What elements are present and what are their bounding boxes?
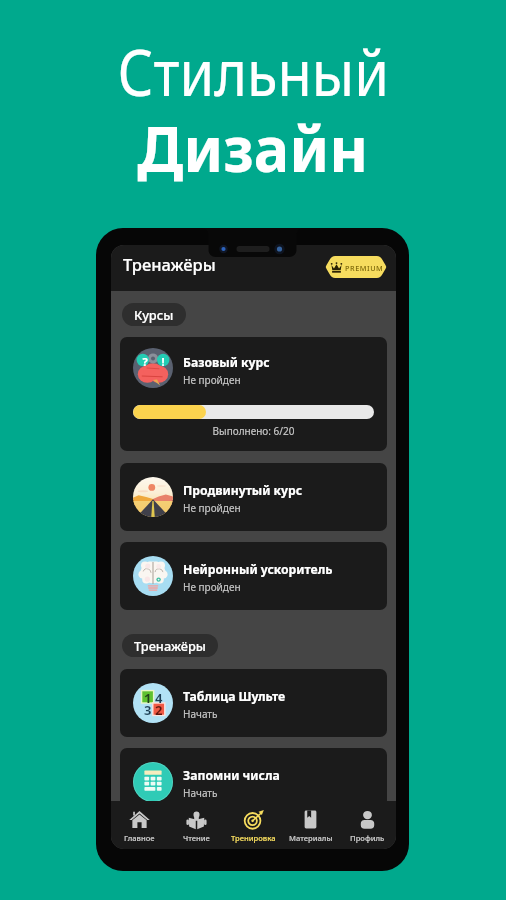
staticText: Тренажёры xyxy=(134,637,206,654)
staticText: 4 xyxy=(155,689,163,707)
button[interactable]: Продвинутый курс xyxy=(120,463,387,531)
staticText: Не пройден xyxy=(183,580,241,594)
staticText: Базовый курс xyxy=(183,354,270,371)
staticText: Тренажёры xyxy=(123,253,216,275)
staticText: Нейронный ускоритель xyxy=(183,561,333,578)
button[interactable]: Главное xyxy=(111,801,168,849)
staticText: Начать xyxy=(183,786,218,800)
staticText: Главное xyxy=(124,833,155,843)
staticText: 1 xyxy=(144,689,152,707)
button[interactable]: Запомни числа xyxy=(120,748,387,816)
button[interactable]: 1 xyxy=(120,669,387,737)
staticText: Материалы xyxy=(289,833,333,843)
button[interactable]: Чтение xyxy=(168,801,225,849)
button[interactable]: Курсы xyxy=(122,303,186,326)
staticText: Не пройден xyxy=(183,373,241,387)
button[interactable]: Тренировка xyxy=(225,801,282,849)
button[interactable]: Нейронный ускоритель xyxy=(120,542,387,610)
staticText: Чтение xyxy=(183,833,210,843)
staticText: ? xyxy=(140,354,150,369)
staticText: Выполнено: 6/20 xyxy=(120,424,387,438)
button[interactable]: ? xyxy=(120,337,387,451)
staticText: PREMIUM xyxy=(345,263,384,273)
button[interactable]: Материалы xyxy=(282,801,339,849)
staticText: Начать xyxy=(183,707,218,721)
staticText: ! xyxy=(158,354,168,369)
staticText: 2 xyxy=(155,701,163,719)
staticText: 3 xyxy=(144,701,152,719)
staticText: Не пройден xyxy=(183,501,241,515)
button[interactable]: PREMIUM xyxy=(325,256,387,278)
staticText: Курсы xyxy=(134,306,174,323)
staticText: Дизайн xyxy=(137,106,369,190)
staticText: Стильный xyxy=(118,28,389,115)
button[interactable]: Профиль xyxy=(339,801,396,849)
staticText: Таблица Шульте xyxy=(183,688,286,705)
button[interactable]: Тренажёры xyxy=(122,634,218,657)
staticText: Профиль xyxy=(350,833,385,843)
staticText: Продвинутый курс xyxy=(183,482,303,499)
staticText: Запомни числа xyxy=(183,767,280,784)
staticText: Тренировка xyxy=(231,833,276,843)
